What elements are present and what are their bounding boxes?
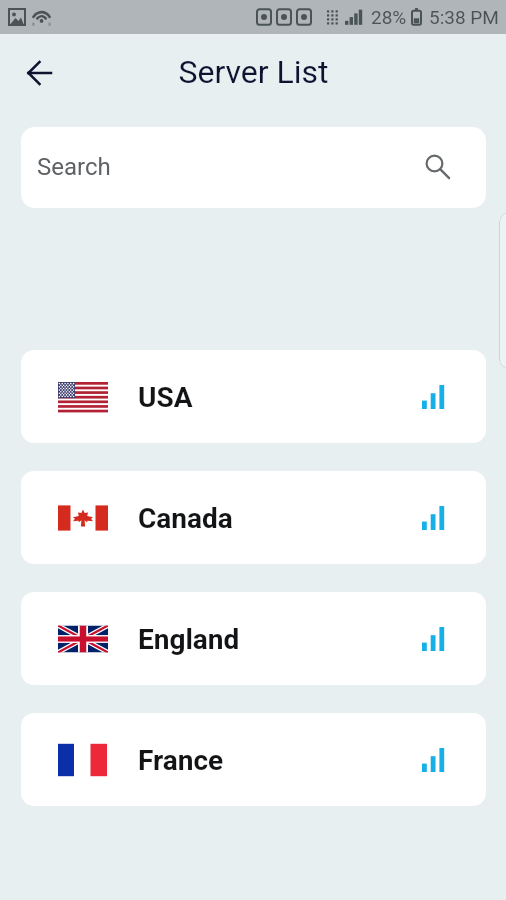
button[interactable]: Search <box>21 127 486 208</box>
staticText: 28% <box>371 6 407 28</box>
button[interactable]: England <box>21 592 486 685</box>
staticText: 5:38 PM <box>429 6 499 28</box>
button[interactable]: Canada <box>21 471 486 564</box>
staticText: Canada <box>138 502 233 535</box>
button[interactable]: France <box>21 713 486 806</box>
staticText: England <box>138 623 240 656</box>
button[interactable]: Search <box>420 146 464 190</box>
button[interactable]: USA <box>21 350 486 443</box>
staticText: USA <box>138 381 193 414</box>
staticText: Server List <box>178 53 329 91</box>
staticText: France <box>138 744 224 777</box>
staticText: Search <box>37 153 111 181</box>
button[interactable]: Back <box>12 49 60 97</box>
